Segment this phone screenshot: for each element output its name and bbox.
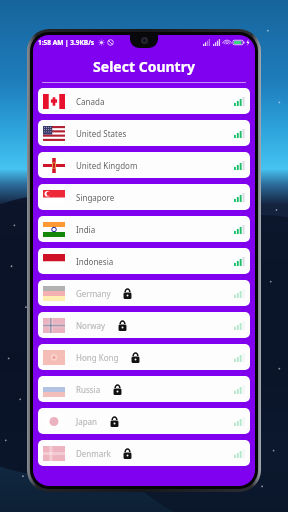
other: Locked	[110, 416, 119, 427]
button[interactable]: Singapore	[38, 184, 250, 210]
staticText: Russia	[76, 384, 101, 395]
staticText: Canada	[76, 96, 105, 107]
staticText: United Kingdom	[76, 160, 138, 171]
staticText: Germany	[76, 288, 111, 299]
button[interactable]: United Kingdom	[38, 152, 250, 178]
other: Locked	[131, 352, 140, 363]
staticText: Select Country	[93, 57, 195, 76]
button[interactable]: Indonesia	[38, 248, 250, 274]
staticText: Denmark	[76, 448, 111, 459]
button[interactable]: Hong Kong	[38, 344, 250, 370]
button[interactable]: Russia	[38, 376, 250, 402]
other: Locked	[123, 288, 132, 299]
other: Locked	[118, 320, 127, 331]
staticText: United States	[76, 128, 127, 139]
staticText: Norway	[76, 320, 106, 331]
staticText: Singapore	[76, 192, 115, 203]
button[interactable]: Germany	[38, 280, 250, 306]
button[interactable]: Japan	[38, 408, 250, 434]
staticText: Hong Kong	[76, 352, 119, 363]
staticText: 1:58 AM | 3.9KB/s	[38, 38, 95, 47]
button[interactable]: United States	[38, 120, 250, 146]
other: Locked	[113, 384, 122, 395]
staticText: Japan	[76, 416, 98, 427]
button[interactable]: Norway	[38, 312, 250, 338]
staticText: Indonesia	[76, 256, 114, 267]
button[interactable]: India	[38, 216, 250, 242]
button[interactable]: Canada	[38, 88, 250, 114]
other: Locked	[123, 448, 132, 459]
staticText: India	[76, 224, 96, 235]
button[interactable]: Denmark	[38, 440, 250, 466]
